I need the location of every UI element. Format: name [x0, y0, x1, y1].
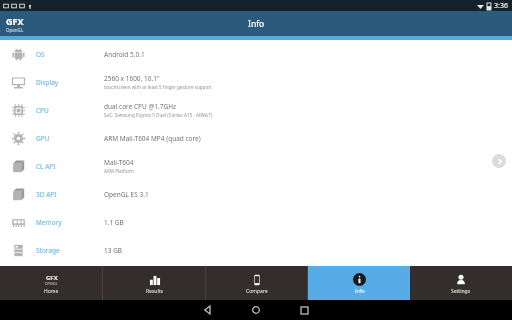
staticText: dual core CPU @1.7GHz	[104, 102, 177, 111]
button[interactable]: Display	[0, 68, 512, 96]
button[interactable]: Next	[492, 154, 506, 168]
button[interactable]: Results	[103, 266, 206, 300]
button[interactable]: GPU	[0, 124, 512, 152]
staticText: GFX	[46, 274, 58, 282]
staticText: 1.1 GB	[104, 218, 124, 227]
staticText: OpenGL ES 3.1	[104, 190, 149, 199]
button[interactable]: Recent apps	[292, 300, 316, 320]
staticText: Info	[248, 18, 265, 30]
staticText: OS	[36, 50, 45, 59]
button[interactable]: Memory	[0, 208, 512, 236]
button[interactable]: CPU	[0, 96, 512, 124]
staticText: OpenGL	[6, 27, 24, 33]
button[interactable]: Storage	[0, 236, 512, 264]
staticText: Info	[355, 288, 365, 295]
staticText: ARM Platform	[104, 168, 134, 174]
staticText: 3:36	[494, 1, 508, 11]
staticText: ARM Mali-T604 MP4 (quad core)	[104, 134, 201, 143]
staticText: 2560 x 1600, 10.1"	[104, 74, 160, 83]
staticText: 3D API	[36, 190, 57, 199]
staticText: Compare	[246, 288, 268, 295]
button[interactable]: CL API	[0, 152, 512, 180]
staticText: CL API	[36, 162, 56, 171]
staticText: OPENGL	[45, 282, 58, 286]
button[interactable]: Back	[196, 300, 220, 320]
staticText: GPU	[36, 134, 50, 143]
button[interactable]: Info	[308, 266, 410, 300]
staticText: Memory	[36, 218, 62, 227]
staticText: GFX	[6, 15, 24, 27]
button[interactable]: Compare	[206, 266, 308, 300]
button[interactable]: GFXBench home	[6, 15, 24, 33]
staticText: CPU	[36, 106, 49, 115]
staticText: Results	[146, 288, 163, 295]
staticText: 13 GB	[104, 246, 123, 255]
staticText: SoC: Samsung Exynos 5 Duel (Cortex A15 -…	[104, 112, 213, 118]
button[interactable]: GFX	[0, 266, 103, 300]
button[interactable]: OS	[0, 40, 512, 68]
staticText: Mali-T604	[104, 158, 134, 167]
staticText: Display	[36, 78, 59, 87]
staticText: Home	[44, 288, 59, 295]
staticText: Android 5.0.1	[104, 50, 145, 59]
button[interactable]: Home	[244, 300, 268, 320]
button[interactable]: Settings	[410, 266, 512, 300]
staticText: Storage	[36, 246, 60, 255]
staticText: Settings	[451, 288, 471, 295]
button[interactable]: 3D API	[0, 180, 512, 208]
staticText: touchscreen with at least 5 finger gestu…	[104, 84, 212, 90]
